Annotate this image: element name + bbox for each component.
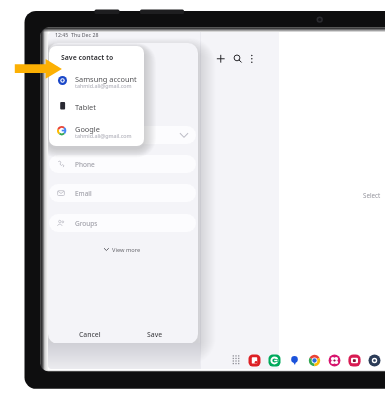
staticText: Cancel [79,330,101,339]
button[interactable]: Open app 7 [368,354,381,367]
button[interactable]: Email [49,184,196,202]
button[interactable]: Tablet [49,94,144,119]
button[interactable]: Open app 1 [248,354,261,367]
staticText: View more [112,246,141,254]
button[interactable]: Phone [49,155,196,173]
button[interactable]: Save contact to account [49,126,196,144]
button[interactable]: More options [245,52,259,66]
staticText: Tablet [75,102,96,112]
button[interactable]: Groups [49,214,196,232]
button[interactable]: Search [231,52,245,66]
button[interactable]: Create contact [214,52,228,66]
button[interactable]: Samsung account [49,69,144,94]
staticText: Save [147,330,163,339]
staticText: Select [363,191,381,199]
button[interactable]: Cancel [66,326,114,342]
button[interactable]: Save [131,326,179,342]
staticText: tahmid.ali@gmail.com [75,82,132,89]
staticText: Phone [75,160,95,169]
button[interactable]: Open app 2 [268,354,281,367]
button[interactable]: Open app 5 [328,354,341,367]
button[interactable]: Open app 3 [288,354,301,367]
staticText: Groups [75,219,98,228]
staticText: tahmid.ali@gmail.com [75,132,132,139]
button[interactable]: All apps [230,352,243,365]
button[interactable]: Google [49,119,144,144]
staticText: Save contact to [61,53,114,62]
staticText: Email [75,189,92,198]
button[interactable]: Open app 4 [308,354,321,367]
staticText: Google [75,124,100,134]
button[interactable]: View more [103,244,143,255]
button[interactable]: Open app 6 [348,354,361,367]
staticText: Samsung account [75,74,137,84]
staticText: 12:45 Thu Dec 28 [55,32,99,38]
